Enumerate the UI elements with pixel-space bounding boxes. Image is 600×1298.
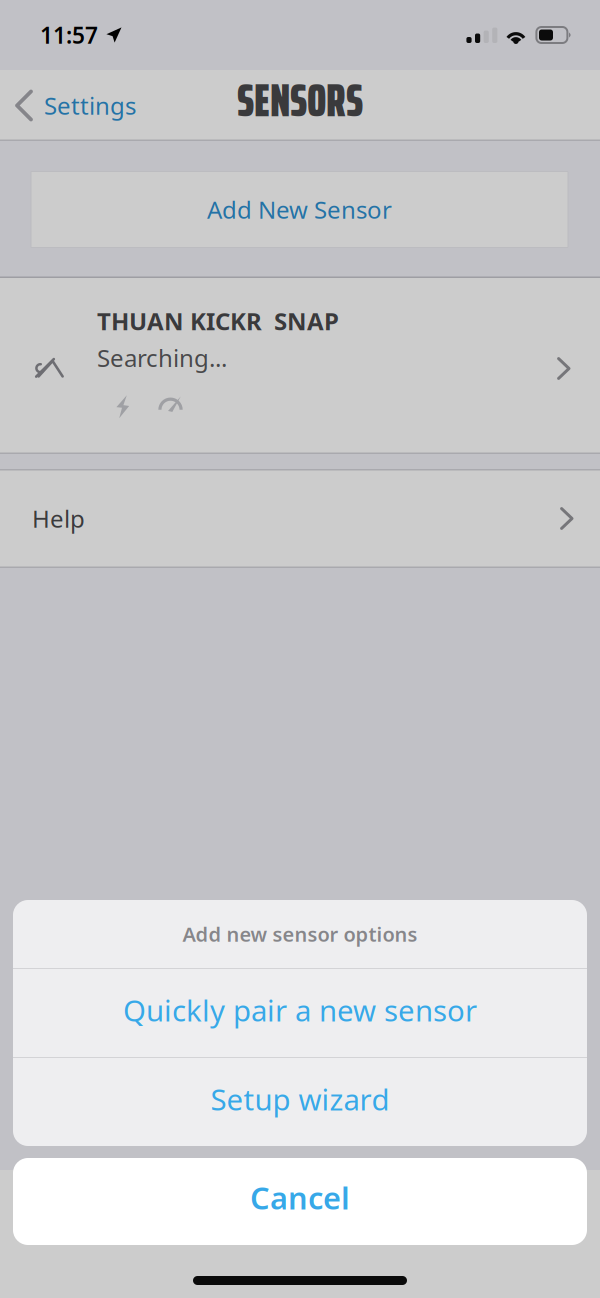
button[interactable]: Settings bbox=[0, 79, 150, 131]
staticText: Settings bbox=[44, 90, 136, 121]
button[interactable]: Add New Sensor bbox=[31, 171, 568, 247]
staticText: Setup wizard bbox=[210, 1079, 389, 1118]
staticText: Searching... bbox=[97, 342, 227, 374]
button[interactable]: Quickly pair a new sensor bbox=[13, 969, 587, 1057]
button[interactable]: Setup wizard bbox=[13, 1058, 587, 1146]
staticText: SENSORS bbox=[237, 65, 363, 136]
staticText: Help bbox=[32, 503, 85, 534]
button[interactable]: Help bbox=[0, 469, 600, 568]
staticText: Cancel bbox=[250, 1177, 350, 1218]
staticText: 11:57 bbox=[40, 20, 98, 50]
button[interactable]: Cancel bbox=[13, 1158, 587, 1245]
button[interactable]: THUAN KICKR SNAP bbox=[0, 278, 600, 454]
staticText: Add new sensor options bbox=[182, 921, 417, 947]
staticText: Quickly pair a new sensor bbox=[123, 990, 477, 1029]
staticText: Add New Sensor bbox=[207, 194, 392, 225]
staticText: THUAN KICKR SNAP bbox=[97, 305, 339, 337]
